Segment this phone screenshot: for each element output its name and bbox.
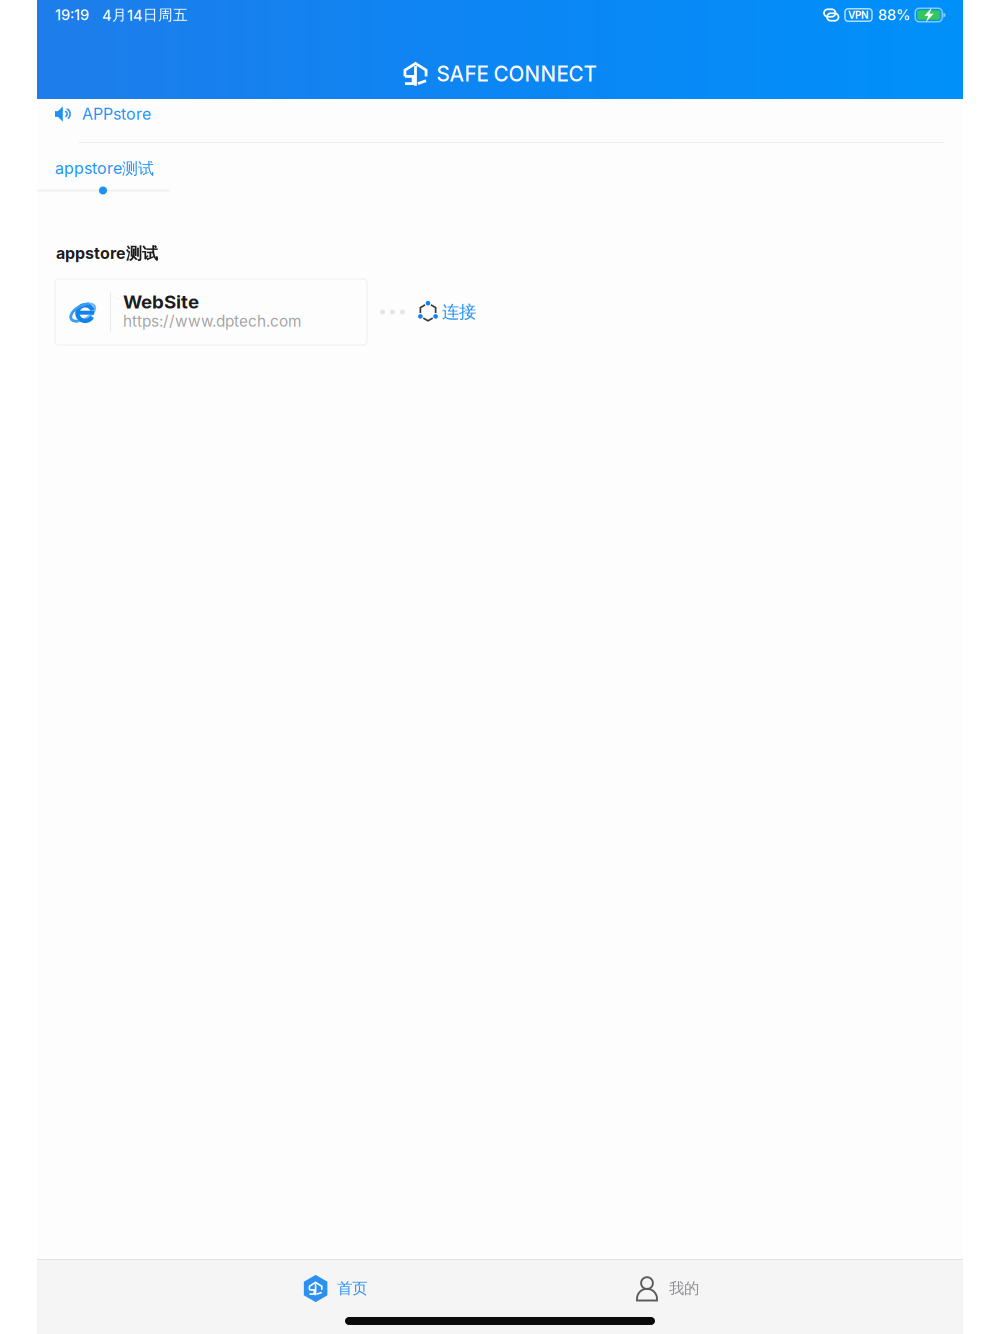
staticText: appstore测试 <box>56 243 158 264</box>
staticText: 连接 <box>442 301 476 323</box>
staticText: WebSite <box>123 290 199 313</box>
staticText: SAFE CONNECT <box>436 61 596 86</box>
staticText: 88% <box>878 6 911 24</box>
button[interactable]: 首页 <box>37 1266 500 1311</box>
staticText: 我的 <box>669 1279 699 1298</box>
staticText: appstore测试 <box>55 158 154 179</box>
staticText: 19:19 <box>55 6 89 24</box>
button[interactable]: appstore测试 <box>37 143 154 186</box>
button[interactable]: 连接 <box>405 292 476 332</box>
staticText: APPstore <box>82 104 151 124</box>
staticText: https://www.dptech.com <box>123 312 301 331</box>
staticText: 首页 <box>337 1279 367 1298</box>
button[interactable]: APPstore <box>37 99 151 142</box>
staticText: VPN <box>848 9 869 21</box>
staticText: 4月14日周五 <box>102 6 188 24</box>
button[interactable]: WebSite <box>55 279 367 345</box>
button[interactable]: 我的 <box>500 1266 963 1311</box>
